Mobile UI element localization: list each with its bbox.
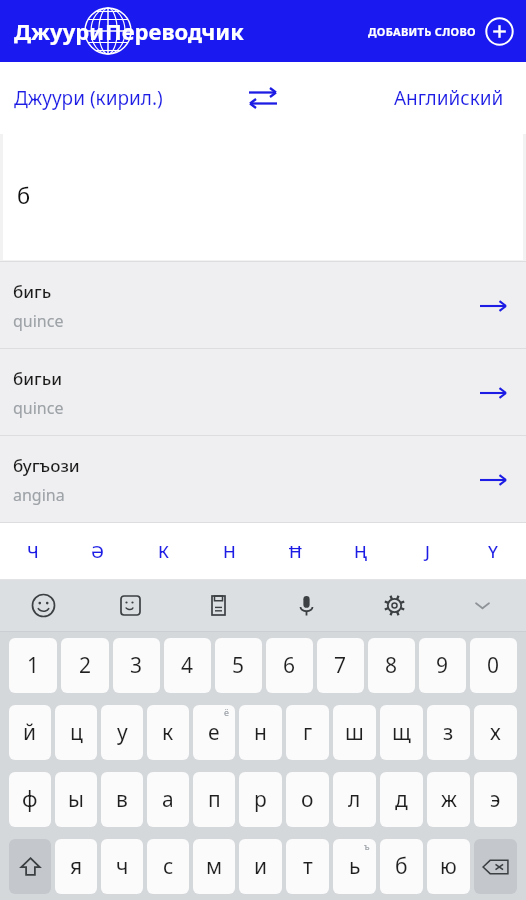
staticText: 8 — [385, 651, 398, 680]
button[interactable]: х — [474, 705, 517, 760]
button[interactable]: К — [130, 523, 196, 579]
staticText: бугъози — [13, 454, 80, 477]
button[interactable]: Ч — [0, 523, 65, 579]
staticText: б — [17, 180, 31, 210]
staticText: 1 — [27, 651, 40, 680]
button[interactable]: Stickers — [87, 580, 174, 631]
button[interactable]: Clipboard — [174, 580, 262, 631]
button[interactable]: в — [101, 772, 143, 827]
button[interactable]: к — [147, 705, 189, 760]
button[interactable]: ч — [101, 839, 143, 894]
staticText: Джуури (кирил.) — [14, 85, 163, 111]
button[interactable]: а — [147, 772, 189, 827]
staticText: ф — [22, 785, 38, 814]
staticText: quince — [13, 397, 64, 419]
staticText: я — [70, 852, 83, 881]
staticText: щ — [392, 718, 411, 747]
staticText: ц — [70, 718, 83, 747]
staticText: Ү — [488, 540, 498, 563]
staticText: к — [162, 718, 174, 747]
button[interactable]: ДОБАВИТЬ СЛОВО — [364, 9, 518, 54]
button[interactable]: н — [239, 705, 282, 760]
button[interactable]: ы — [55, 772, 97, 827]
button[interactable]: Английский — [386, 77, 526, 119]
button[interactable]: п — [193, 772, 235, 827]
button[interactable]: бигь — [0, 262, 526, 349]
button[interactable]: Emoji — [0, 580, 87, 631]
staticText: Ħ — [289, 540, 302, 563]
staticText: ю — [440, 852, 457, 881]
button[interactable]: 9 — [419, 638, 466, 693]
button[interactable] — [3, 134, 523, 260]
staticText: ж — [441, 785, 457, 814]
button[interactable]: Ү — [460, 523, 526, 579]
staticText: quince — [13, 310, 64, 332]
button[interactable]: б — [380, 839, 423, 894]
button[interactable]: й — [9, 705, 51, 760]
button[interactable]: бигьи — [0, 349, 526, 436]
staticText: Ч — [27, 540, 39, 563]
button[interactable]: Ħ — [262, 523, 328, 579]
button[interactable]: ь — [333, 839, 376, 894]
staticText: angina — [13, 484, 65, 506]
staticText: з — [443, 718, 454, 747]
button[interactable]: 6 — [266, 638, 313, 693]
button[interactable]: 0 — [470, 638, 517, 693]
button[interactable]: щ — [380, 705, 423, 760]
button[interactable]: 8 — [368, 638, 415, 693]
staticText: ы — [68, 785, 84, 814]
button[interactable]: т — [286, 839, 329, 894]
button[interactable]: 3 — [113, 638, 160, 693]
staticText: 2 — [79, 651, 92, 680]
button[interactable]: з — [427, 705, 470, 760]
button[interactable]: 5 — [215, 638, 262, 693]
button[interactable]: с — [147, 839, 189, 894]
button[interactable]: Hide keyboard — [438, 580, 526, 631]
button[interactable]: м — [193, 839, 235, 894]
staticText: Ә — [91, 540, 104, 563]
button[interactable]: 1 — [9, 638, 57, 693]
staticText: 6 — [283, 651, 296, 680]
button[interactable]: Ә — [65, 523, 130, 579]
button[interactable]: е — [193, 705, 235, 760]
staticText: э — [490, 785, 501, 814]
button[interactable]: Swap languages — [237, 72, 289, 124]
button[interactable]: 2 — [61, 638, 109, 693]
button[interactable]: о — [286, 772, 329, 827]
button[interactable]: ц — [55, 705, 97, 760]
button[interactable]: э — [474, 772, 517, 827]
button[interactable]: Voice input — [262, 580, 350, 631]
staticText: г — [303, 718, 313, 747]
button[interactable]: л — [333, 772, 376, 827]
button[interactable]: ж — [427, 772, 470, 827]
staticText: Английский — [394, 85, 504, 111]
button[interactable]: 7 — [317, 638, 364, 693]
button[interactable]: Ј — [394, 523, 460, 579]
staticText: е — [208, 718, 220, 747]
staticText: ъ — [364, 840, 370, 852]
button[interactable]: и — [239, 839, 282, 894]
staticText: п — [208, 785, 221, 814]
staticText: й — [23, 718, 37, 747]
button[interactable]: Shift — [9, 839, 51, 894]
button[interactable]: Н — [196, 523, 262, 579]
staticText: ь — [349, 852, 361, 881]
button[interactable]: Settings — [350, 580, 438, 631]
button[interactable]: Джуури (кирил.) — [0, 77, 171, 119]
button[interactable]: Backspace — [474, 839, 517, 894]
button[interactable]: д — [380, 772, 423, 827]
staticText: о — [301, 785, 314, 814]
button[interactable]: у — [101, 705, 143, 760]
button[interactable]: 4 — [164, 638, 211, 693]
button[interactable]: бугъози — [0, 436, 526, 523]
button[interactable]: ш — [333, 705, 376, 760]
button[interactable]: Ң — [328, 523, 394, 579]
button[interactable]: ф — [9, 772, 51, 827]
staticText: 0 — [487, 651, 500, 680]
button[interactable]: ю — [427, 839, 470, 894]
button[interactable]: я — [55, 839, 97, 894]
staticText: м — [206, 852, 223, 881]
button[interactable]: г — [286, 705, 329, 760]
button[interactable]: р — [239, 772, 282, 827]
staticText: а — [162, 785, 174, 814]
